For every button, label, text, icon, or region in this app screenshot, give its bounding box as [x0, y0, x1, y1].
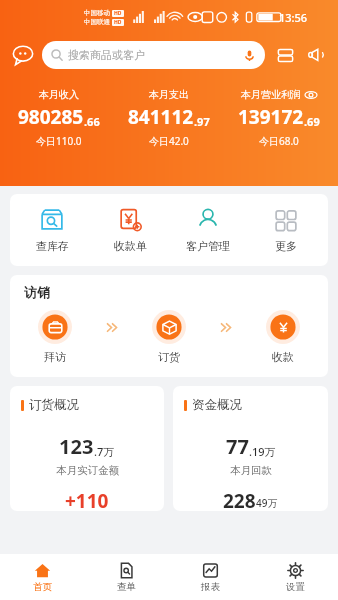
staticText: .19万 — [249, 444, 276, 459]
button[interactable]: 收款单 — [94, 207, 166, 253]
staticText: 访销 — [24, 284, 50, 300]
staticText: 841112 — [128, 104, 194, 130]
staticText: .7万 — [94, 444, 115, 459]
staticText: .69 — [304, 114, 320, 129]
staticText: 查库存 — [36, 239, 69, 253]
staticText: 中国联通 — [84, 18, 110, 26]
staticText: 收款单 — [114, 239, 147, 253]
staticText: 收款 — [272, 350, 294, 364]
staticText: HD — [114, 10, 122, 17]
button[interactable]: 收款 — [250, 310, 316, 364]
button[interactable]: 搜索商品或客户 — [42, 41, 265, 69]
staticText: 139172 — [238, 104, 304, 130]
staticText: 今日110.0 — [36, 134, 82, 148]
staticText: 本月营业利润 — [241, 88, 301, 101]
staticText: 228 — [223, 488, 256, 511]
staticText: 77 — [226, 433, 249, 460]
staticText: .66 — [84, 114, 100, 129]
staticText: 设置 — [286, 581, 305, 593]
button[interactable]: 资金概况 — [173, 386, 328, 511]
staticText: HD — [114, 19, 122, 26]
button[interactable]: 订货概况 — [10, 386, 164, 511]
staticText: 本月支出 — [149, 88, 189, 101]
button[interactable]: Messages — [9, 41, 37, 69]
staticText: 49万 — [256, 496, 278, 510]
button[interactable]: 报表 — [168, 554, 253, 600]
staticText: 本月收入 — [39, 88, 79, 101]
staticText: 拜访 — [44, 350, 66, 364]
staticText: .97 — [194, 114, 210, 129]
staticText: 更多 — [275, 239, 297, 253]
button[interactable]: 首页 — [0, 554, 84, 600]
staticText: 13:56 — [279, 10, 308, 25]
staticText: 订货概况 — [29, 397, 79, 413]
staticText: 中国移动 — [84, 9, 110, 17]
staticText: 报表 — [201, 581, 220, 593]
button[interactable]: 订货 — [136, 310, 202, 364]
button[interactable]: 查单 — [84, 554, 168, 600]
staticText: 今日68.0 — [259, 134, 299, 148]
staticText: +110 — [65, 488, 109, 511]
staticText: 客户管理 — [186, 239, 230, 253]
staticText: 123 — [59, 433, 94, 460]
button[interactable]: Announcements — [303, 42, 329, 68]
button[interactable]: 客户管理 — [172, 207, 244, 253]
staticText: 本月实订金额 — [56, 464, 119, 477]
button[interactable]: 更多 — [250, 207, 322, 253]
staticText: 今日42.0 — [149, 134, 189, 148]
button[interactable]: Scan list — [272, 42, 298, 68]
staticText: 980285 — [18, 104, 84, 130]
staticText: 本月回款 — [230, 464, 272, 477]
staticText: 订货 — [158, 350, 180, 364]
staticText: 查单 — [117, 581, 136, 593]
staticText: 资金概况 — [192, 397, 242, 413]
staticText: 搜索商品或客户 — [68, 48, 145, 62]
button[interactable]: 查库存 — [16, 207, 88, 253]
button[interactable]: Toggle visibility — [304, 88, 317, 101]
staticText: 首页 — [33, 581, 52, 593]
button[interactable]: 拜访 — [22, 310, 88, 364]
button[interactable]: 设置 — [253, 554, 338, 600]
